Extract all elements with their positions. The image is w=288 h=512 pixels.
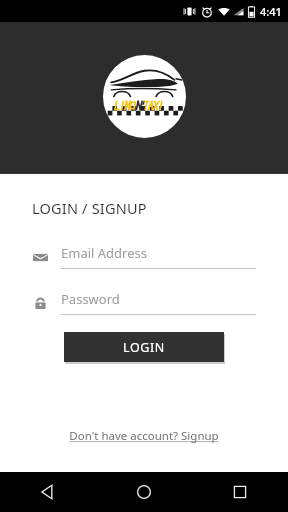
staticText: Don't have account? Signup: [69, 428, 219, 444]
button[interactable]: Email: [32, 244, 256, 269]
button[interactable]: Recent apps: [192, 472, 288, 512]
staticText: LOGIN / SIGNUP: [32, 198, 147, 218]
button[interactable]: Back: [0, 472, 96, 512]
button[interactable]: Home: [96, 472, 192, 512]
button[interactable]: Don't have account? Signup: [59, 422, 229, 450]
staticText: Password: [61, 290, 120, 308]
button[interactable]: Password: [32, 290, 256, 315]
staticText: Email Address: [61, 244, 147, 262]
staticText: 4:41: [260, 4, 282, 19]
staticText: LOGIN: [123, 339, 165, 356]
button[interactable]: LOGIN: [64, 332, 224, 362]
other: Email: [32, 249, 48, 265]
other: Password: [32, 295, 48, 311]
